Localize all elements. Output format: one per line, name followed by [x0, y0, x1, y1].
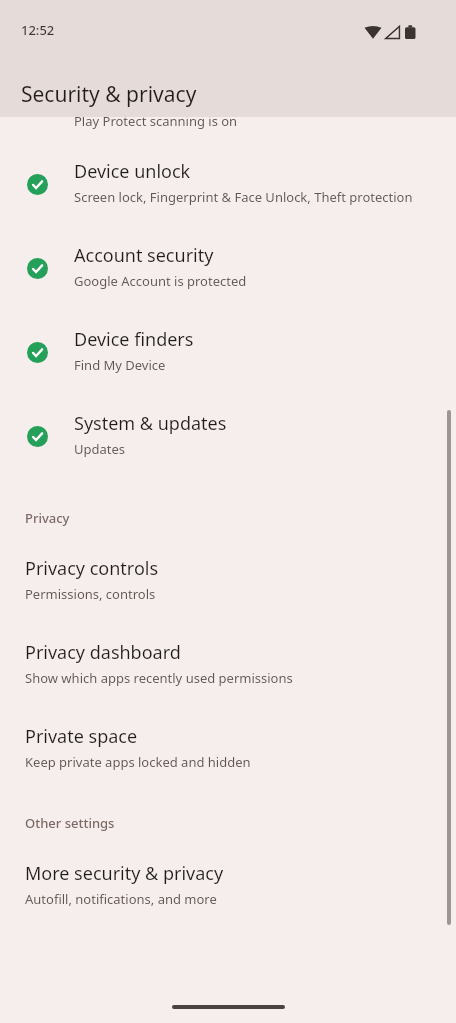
button[interactable]: Device unlock	[0, 145, 456, 229]
staticText: 12:52	[21, 21, 55, 39]
staticText: Autofill, notifications, and more	[25, 890, 217, 908]
staticText: Google Account is protected	[74, 272, 247, 290]
staticText: More security & privacy	[25, 861, 224, 886]
button[interactable]: More security & privacy	[0, 851, 456, 935]
button[interactable]: Private space	[0, 714, 456, 798]
button[interactable]: Device finders	[0, 313, 456, 397]
staticText: Private space	[25, 724, 138, 749]
staticText: Privacy controls	[25, 556, 159, 581]
staticText: Find My Device	[74, 356, 166, 374]
staticText: Device finders	[74, 327, 194, 352]
staticText: Privacy dashboard	[25, 640, 181, 665]
button[interactable]: System & updates	[0, 397, 456, 481]
staticText: Account security	[74, 243, 214, 268]
staticText: Device unlock	[74, 159, 191, 184]
button[interactable]: Privacy controls	[0, 546, 456, 630]
staticText: Security & privacy	[21, 80, 197, 109]
staticText: Permissions, controls	[25, 585, 156, 603]
staticText: Privacy	[25, 509, 70, 527]
staticText: Updates	[74, 440, 126, 458]
button[interactable]: Account security	[0, 229, 456, 313]
staticText: System & updates	[74, 411, 227, 436]
staticText: Screen lock, Fingerprint & Face Unlock, …	[74, 188, 413, 206]
button[interactable]: Privacy dashboard	[0, 630, 456, 714]
staticText: Other settings	[25, 814, 115, 832]
staticText: Play Protect scanning is on	[74, 112, 238, 130]
staticText: Keep private apps locked and hidden	[25, 753, 251, 771]
staticText: Show which apps recently used permission…	[25, 669, 293, 687]
